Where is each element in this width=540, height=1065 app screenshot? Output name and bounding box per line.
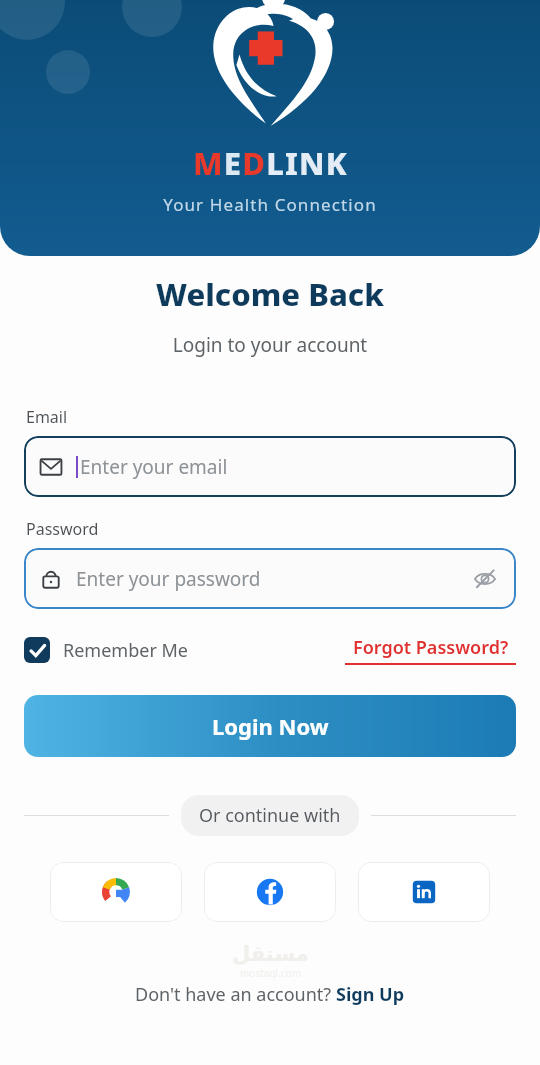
staticText: Don't have an account? bbox=[135, 982, 336, 1007]
button[interactable]: Login Now bbox=[24, 695, 516, 757]
button[interactable]: Enter your password bbox=[24, 548, 516, 609]
button[interactable]: Sign in with Facebook bbox=[204, 862, 336, 922]
staticText: Remember Me bbox=[63, 638, 188, 663]
staticText: Or continue with bbox=[199, 803, 341, 828]
staticText: mostaql.com bbox=[240, 966, 302, 980]
staticText: Enter your email bbox=[80, 454, 500, 480]
button[interactable]: Sign in with LinkedIn bbox=[358, 862, 490, 922]
staticText: Sign Up bbox=[336, 982, 405, 1007]
button[interactable]: Enter your email bbox=[24, 436, 516, 497]
staticText: Email bbox=[26, 406, 68, 428]
button[interactable]: Forgot Password? bbox=[345, 635, 516, 665]
staticText: Forgot Password? bbox=[353, 635, 509, 660]
button[interactable]: Sign in with Google bbox=[50, 862, 182, 922]
staticText: MEDLINK bbox=[193, 142, 348, 184]
staticText: Login Now bbox=[212, 711, 329, 741]
button[interactable]: Show password bbox=[470, 564, 500, 594]
staticText: Password bbox=[26, 518, 99, 540]
staticText: Login to your account bbox=[0, 332, 540, 358]
button[interactable]: Sign Up bbox=[336, 982, 405, 1007]
staticText: مستقل bbox=[232, 942, 309, 966]
staticText: Enter your password bbox=[76, 566, 470, 592]
staticText: Your Health Connection bbox=[163, 193, 377, 216]
staticText: Welcome Back bbox=[0, 273, 540, 315]
button[interactable]: Remember Me bbox=[24, 637, 188, 663]
